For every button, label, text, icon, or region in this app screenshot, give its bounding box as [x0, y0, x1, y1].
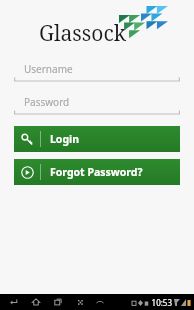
button[interactable]: Home: [26, 294, 46, 310]
button[interactable]: Username: [14, 60, 180, 82]
staticText: Password: [24, 95, 70, 109]
button[interactable]: Login: [14, 126, 180, 152]
staticText: Glassock: [39, 19, 127, 48]
other: Login: [21, 133, 34, 146]
button[interactable]: Forgot Password: [14, 159, 180, 185]
button[interactable]: Recent apps: [48, 294, 68, 310]
other: Forgot Password: [21, 166, 34, 179]
button[interactable]: Screenshot: [70, 294, 90, 310]
button[interactable]: Back: [4, 294, 24, 310]
staticText: Login: [50, 132, 80, 146]
staticText: Username: [24, 62, 73, 76]
staticText: 10:53: [151, 297, 172, 308]
button[interactable]: Password: [14, 93, 180, 115]
staticText: Forgot Password?: [50, 165, 143, 179]
